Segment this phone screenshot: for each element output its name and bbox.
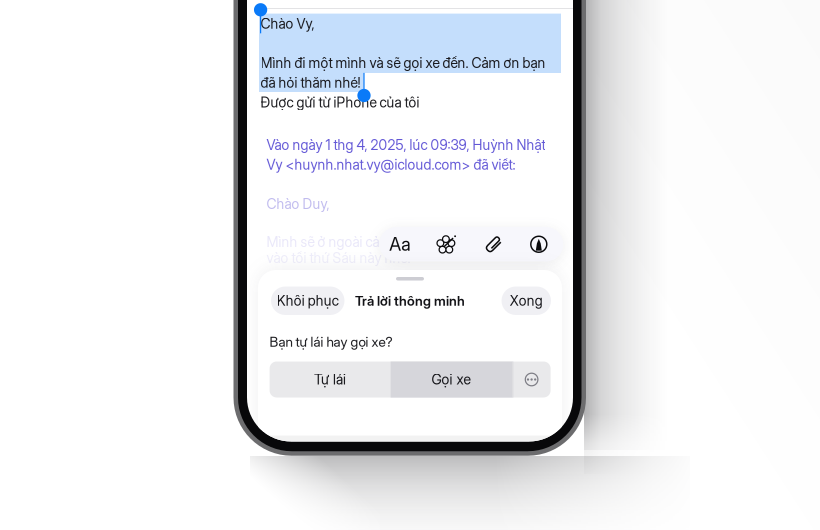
staticText: đã hỏi thăm nhé!	[261, 74, 361, 91]
staticText: Vy <huynh.nhat.vy@icloud.com> đã viết:	[266, 156, 515, 173]
staticText: Được gửi từ iPhone của tôi	[261, 94, 420, 111]
staticText: Vào ngày 1 thg 4, 2025, lúc 09:39, Huỳnh…	[266, 137, 545, 153]
button[interactable]: Gọi xe	[391, 361, 513, 397]
staticText: Bạn tự lái hay gọi xe?	[270, 334, 393, 350]
staticText: Chào Duy,	[266, 196, 329, 212]
button[interactable]: Writing Tools	[429, 227, 463, 261]
staticText: Mình đi một mình và sẽ gọi xe đến. Cảm ơ…	[261, 55, 546, 71]
button[interactable]: Xong	[501, 286, 551, 315]
staticText: Gọi xe	[432, 371, 472, 388]
button[interactable]: Tự lái	[270, 361, 391, 397]
staticText: Xong	[510, 292, 543, 309]
staticText: Aa	[389, 233, 410, 255]
staticText: Mình sẽ ở ngoài cả buổi chiều,	[266, 234, 448, 250]
staticText: Trả lời thông minh	[355, 293, 465, 309]
staticText: vào tối thứ Sáu này nhé.	[266, 250, 410, 266]
button[interactable]: More reply options	[513, 361, 551, 397]
staticText: Chào Vy,	[261, 15, 315, 32]
staticText: Tự lái	[314, 371, 346, 388]
staticText: Khôi phục	[277, 292, 339, 309]
button[interactable]: Khôi phục	[271, 286, 344, 315]
button[interactable]: Aa	[379, 227, 421, 261]
button[interactable]: Attach file	[477, 227, 511, 261]
button[interactable]: Markup	[522, 227, 556, 261]
